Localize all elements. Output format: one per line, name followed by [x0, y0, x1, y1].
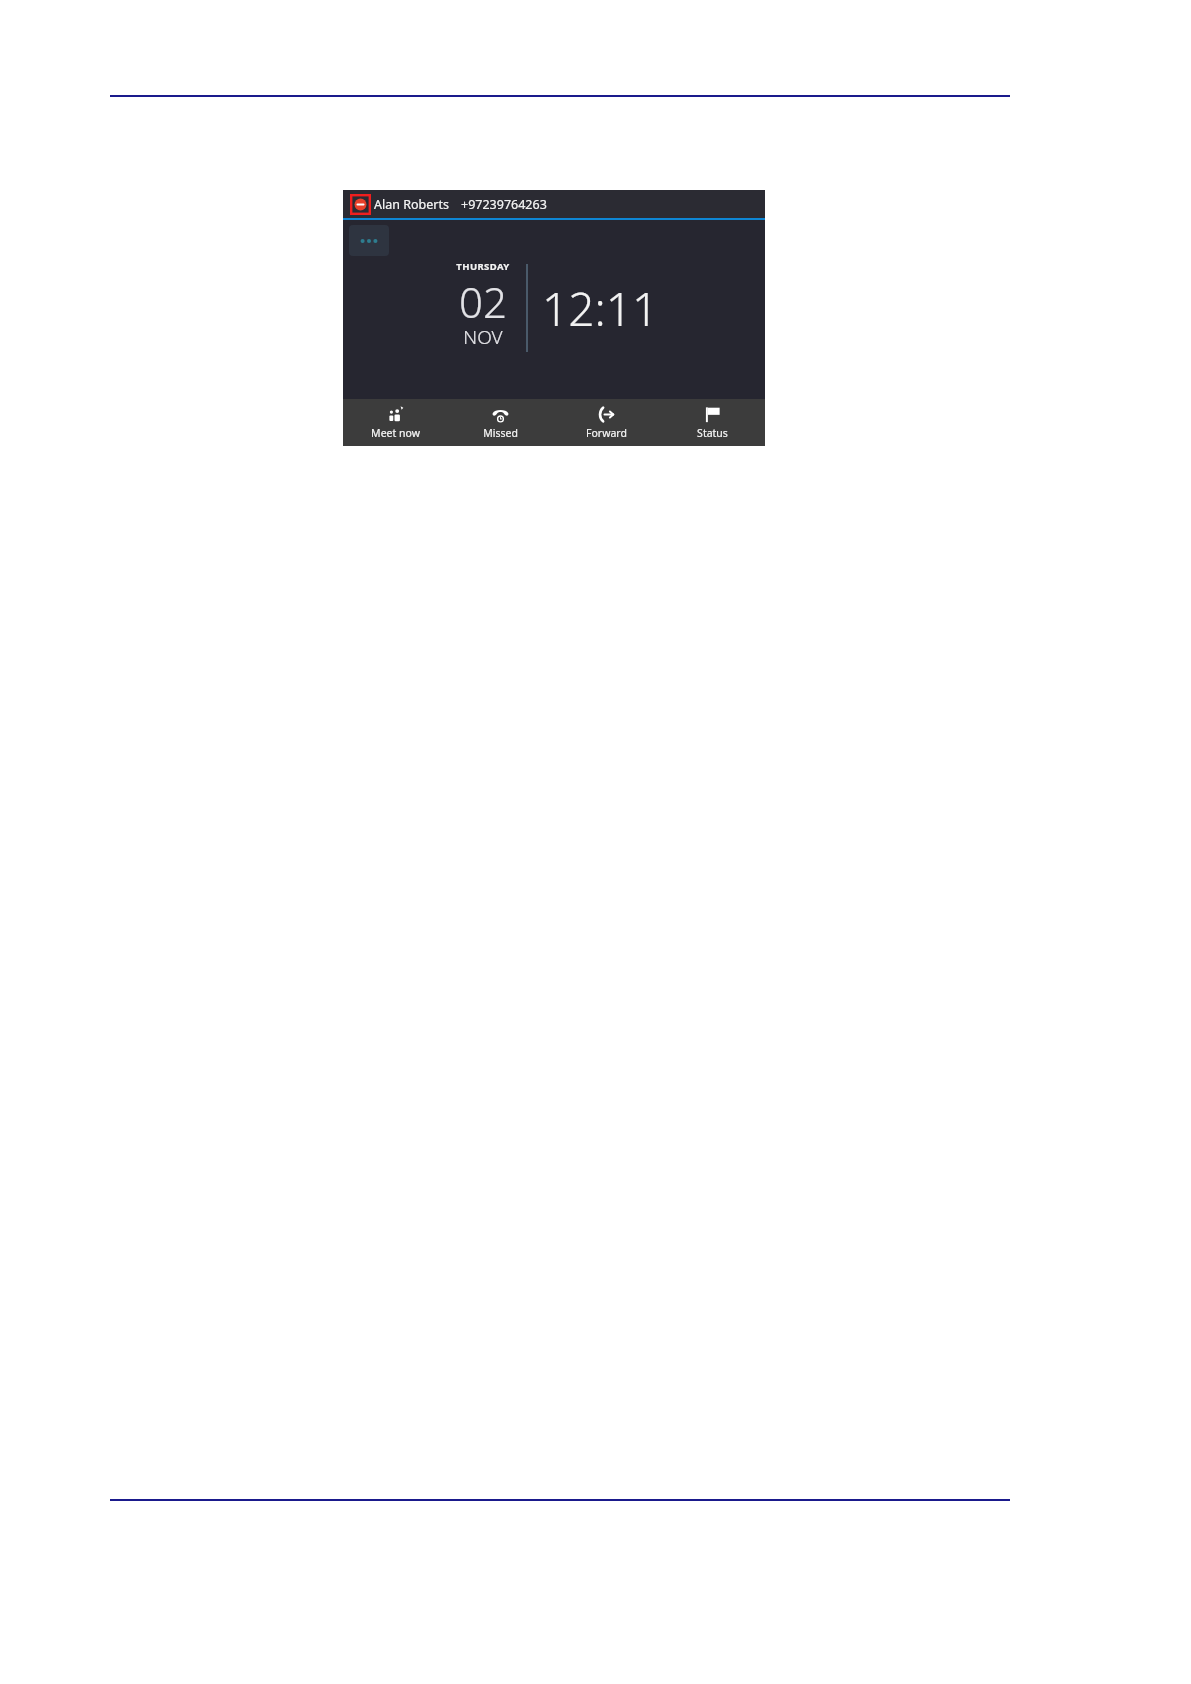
- staticText: THURSDAY: [456, 260, 510, 273]
- staticText: Status: [697, 426, 728, 440]
- button[interactable]: Status: [659, 399, 765, 446]
- staticText: Meet now: [371, 426, 420, 440]
- staticText: +97239764263: [461, 196, 547, 213]
- button[interactable]: Forward: [553, 399, 659, 446]
- button[interactable]: Meet now: [343, 399, 448, 446]
- staticText: Missed: [483, 426, 518, 440]
- staticText: 12:11: [542, 277, 659, 340]
- staticText: Alan Roberts: [374, 196, 449, 213]
- button[interactable]: Presence: Do not disturb: [350, 194, 371, 215]
- staticText: NOV: [463, 324, 503, 350]
- button[interactable]: More options: [349, 225, 389, 256]
- button[interactable]: Missed: [448, 399, 553, 446]
- staticText: 02: [459, 273, 507, 330]
- staticText: Forward: [586, 426, 627, 440]
